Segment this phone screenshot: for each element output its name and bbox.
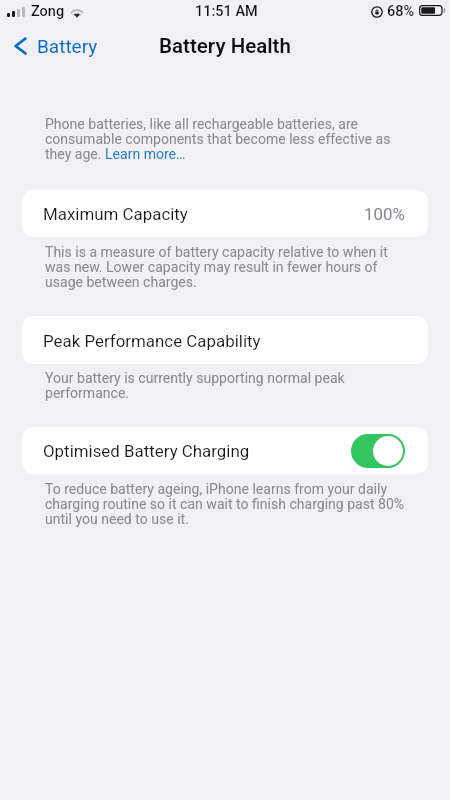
staticText: Phone batteries, like all rechargeable b…	[45, 117, 405, 162]
staticText: Your battery is currently supporting nor…	[45, 371, 405, 401]
button[interactable]: Optimised Battery Charging	[22, 427, 428, 474]
staticText: 11:51 AM	[195, 3, 258, 20]
staticText: 100%	[364, 204, 405, 224]
staticText: Zong	[31, 3, 65, 20]
button[interactable]: Optimised Battery Charging, on	[351, 434, 405, 468]
button[interactable]: Maximum Capacity	[22, 190, 428, 237]
staticText: This is a measure of battery capacity re…	[45, 245, 405, 290]
button[interactable]: Back to Battery	[14, 35, 98, 57]
staticText: Optimised Battery Charging	[43, 441, 250, 461]
other: Back to Battery	[14, 37, 27, 55]
staticText: Peak Performance Capability	[43, 331, 261, 351]
staticText: To reduce battery ageing, iPhone learns …	[45, 482, 405, 527]
staticText: 68%	[387, 3, 415, 20]
button[interactable]: Peak Performance Capability	[22, 316, 428, 364]
staticText: Battery Health	[159, 34, 291, 58]
staticText: Maximum Capacity	[43, 204, 188, 224]
staticText: Battery	[37, 35, 98, 57]
